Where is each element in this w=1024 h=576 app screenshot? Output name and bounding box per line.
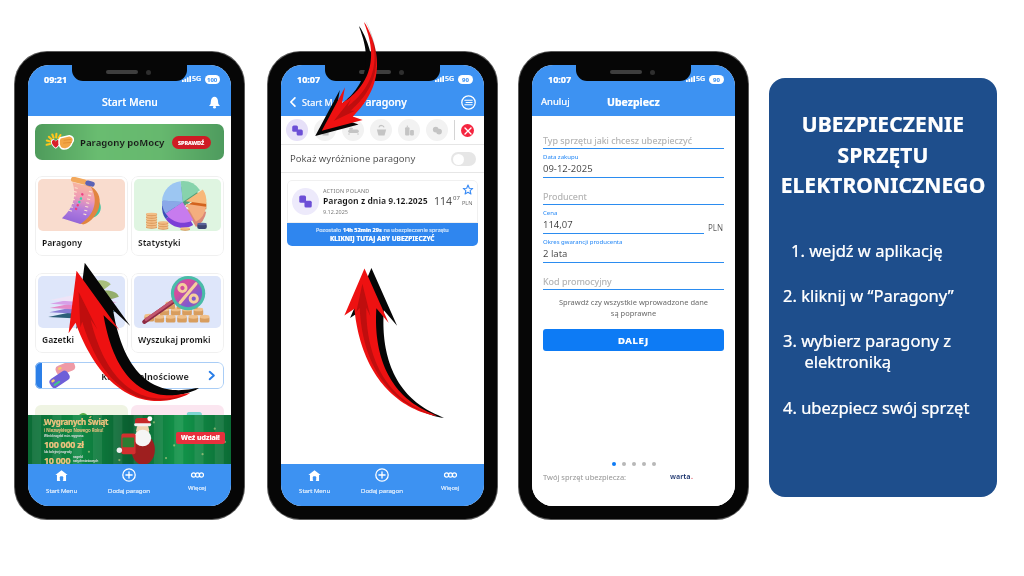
button[interactable]: Pokaż wyróżnione paragony bbox=[290, 145, 476, 172]
staticText: 100 bbox=[207, 76, 218, 84]
staticText: 1. wejdź w aplikację bbox=[791, 239, 943, 261]
staticText: 4. ubezpiecz swój sprzęt bbox=[783, 396, 970, 418]
staticText: warta bbox=[670, 472, 691, 482]
staticText: na ubezpieczenie sprzętu bbox=[382, 226, 449, 233]
staticText: Start Menu bbox=[102, 95, 158, 109]
button[interactable]: Karty lojalnościowe bbox=[35, 362, 224, 389]
staticText: Start Menu bbox=[299, 486, 331, 494]
button[interactable]: Statystyki bbox=[131, 176, 224, 256]
staticText: Start Menu bbox=[46, 486, 78, 494]
staticText: 2 lata bbox=[543, 247, 724, 260]
button[interactable]: Filter 1 bbox=[314, 119, 336, 141]
staticText: 114,07 bbox=[543, 218, 704, 231]
staticText: Kod promocyjny bbox=[543, 275, 724, 287]
button[interactable]: Start Menu bbox=[281, 464, 348, 498]
staticText: Start Menu bbox=[302, 96, 349, 108]
button[interactable]: Gazetki bbox=[35, 273, 128, 353]
staticText: Producent bbox=[543, 190, 724, 202]
staticText: i Niezwykłego Nowego Roku! bbox=[44, 427, 104, 433]
staticText: 9.12.2025 bbox=[323, 208, 348, 215]
staticText: Typ sprzętu jaki chcesz ubezpieczyć bbox=[543, 134, 724, 146]
staticText: Anuluj bbox=[541, 95, 570, 108]
button[interactable]: Notifications bbox=[205, 93, 223, 111]
staticText: 09:21 bbox=[44, 73, 68, 85]
staticText: DALEJ bbox=[618, 334, 649, 347]
staticText: Wygranych Świąt bbox=[44, 416, 109, 427]
button[interactable]: Start Menu bbox=[281, 87, 353, 116]
staticText: Pozostało bbox=[316, 226, 343, 233]
staticText: Okres gwarancji producenta bbox=[543, 238, 623, 246]
staticText: Gazetki bbox=[42, 334, 75, 346]
staticText: 10:07 bbox=[548, 73, 572, 85]
button[interactable]: Filter 0 bbox=[286, 119, 308, 141]
staticText: 5G bbox=[445, 74, 455, 84]
button[interactable]: Więcej bbox=[163, 464, 231, 498]
staticText: 3. wybierz paragony z elektroniką bbox=[783, 329, 952, 373]
staticText: . bbox=[691, 472, 693, 482]
button[interactable]: Favourite bbox=[462, 184, 474, 196]
staticText: 2. kliknij w “Paragony” bbox=[783, 284, 954, 306]
button[interactable]: Start Menu bbox=[28, 464, 95, 498]
staticText: Pokaż wyróżnione paragony bbox=[290, 152, 451, 165]
staticText: 90 bbox=[462, 76, 469, 84]
button[interactable]: Paragony bbox=[35, 176, 128, 256]
button[interactable]: Wyszukaj promki bbox=[131, 273, 224, 353]
staticText: SPRAWDŹ bbox=[178, 139, 205, 146]
staticText: Paragony poMocy bbox=[80, 136, 165, 149]
button[interactable]: Anuluj bbox=[532, 87, 579, 116]
staticText: PLN bbox=[462, 199, 473, 206]
staticText: 14h 52min 29s bbox=[343, 226, 382, 233]
staticText: nagród bbox=[73, 455, 83, 459]
staticText: PLN bbox=[708, 222, 724, 233]
staticText: Statystyki bbox=[138, 237, 181, 249]
staticText: 5G bbox=[696, 74, 706, 84]
staticText: ACTION POLAND bbox=[323, 187, 370, 194]
staticText: Karty lojalnościowe bbox=[85, 370, 205, 382]
staticText: 09-12-2025 bbox=[543, 162, 724, 175]
staticText: Twój sprzęt ubezpiecza: bbox=[543, 472, 627, 482]
staticText: 10 000 bbox=[44, 454, 71, 464]
button[interactable]: Filter 3 bbox=[370, 119, 392, 141]
staticText: 90 bbox=[713, 76, 720, 84]
staticText: Dodaj paragon bbox=[108, 486, 150, 494]
staticText: 114 bbox=[434, 194, 453, 208]
staticText: Więcej bbox=[188, 483, 207, 491]
staticText: Weź udział! bbox=[181, 433, 220, 443]
staticText: 5G bbox=[192, 74, 202, 84]
button[interactable]: Filter 4 bbox=[398, 119, 420, 141]
staticText: Cena bbox=[543, 209, 558, 217]
staticText: Wśród nagród m.in. wygrana bbox=[44, 434, 84, 438]
staticText: 100 000 zł bbox=[44, 438, 84, 450]
button[interactable]: Filter 2 bbox=[342, 119, 364, 141]
button[interactable]: Clear filters bbox=[461, 124, 474, 137]
staticText: Data zakupu bbox=[543, 153, 579, 161]
button[interactable]: DALEJ bbox=[543, 329, 724, 351]
staticText: Ubezpiecz bbox=[607, 95, 660, 109]
button[interactable]: Menu bbox=[459, 93, 477, 111]
button[interactable]: Dodaj paragon bbox=[95, 464, 163, 498]
button[interactable]: Więcej bbox=[416, 464, 484, 498]
staticText: lub kolejnej nagrody bbox=[44, 450, 72, 454]
staticText: 10:07 bbox=[297, 73, 321, 85]
button[interactable]: Paragony poMocy bbox=[35, 124, 224, 160]
staticText: Wyszukaj promki bbox=[138, 334, 211, 346]
button[interactable]: Dodaj paragon bbox=[348, 464, 416, 498]
button[interactable]: ACTION POLAND bbox=[287, 180, 478, 223]
staticText: natychmiastowych bbox=[73, 459, 99, 463]
button[interactable]: Pozostało bbox=[287, 226, 478, 243]
staticText: Paragony bbox=[359, 95, 407, 109]
staticText: Dodaj paragon bbox=[361, 486, 403, 494]
staticText: Paragony bbox=[42, 237, 83, 249]
staticText: Sprawdź czy wszystkie wprowadzone dane s… bbox=[543, 297, 724, 318]
button[interactable]: Weź udział! bbox=[176, 432, 225, 444]
staticText: UBEZPIECZENIE SPRZĘTU ELEKTRONICZNEGO bbox=[769, 110, 997, 199]
staticText: Więcej bbox=[441, 483, 460, 491]
staticText: KLIKNIJ TUTAJ ABY UBEZPIECZYĆ bbox=[330, 234, 435, 243]
staticText: Paragon z dnia 9.12.2025 bbox=[323, 195, 428, 207]
button[interactable]: Filter 5 bbox=[426, 119, 448, 141]
staticText: 07 bbox=[453, 194, 460, 202]
